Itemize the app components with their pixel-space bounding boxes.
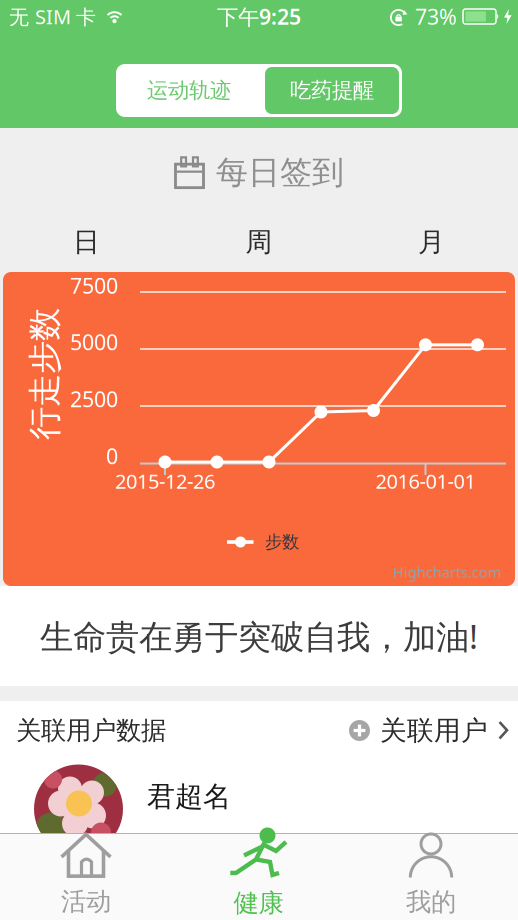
staticText: 7500: [70, 271, 118, 300]
staticText: 每日签到: [216, 153, 344, 192]
button[interactable]: 每日签到: [174, 153, 344, 192]
staticText: 生命贵在勇于突破自我，加油!: [40, 614, 478, 658]
button[interactable]: 君超名: [0, 774, 518, 833]
button[interactable]: 健康: [172, 833, 345, 920]
staticText: 无 SIM 卡: [9, 3, 96, 30]
staticText: 2015-12-26: [115, 468, 215, 494]
button[interactable]: 周: [172, 228, 345, 256]
button[interactable]: 活动: [0, 833, 172, 920]
staticText: 5000: [70, 328, 118, 356]
staticText: 关联用户数据: [16, 715, 166, 746]
staticText: 关联用户: [380, 714, 488, 747]
staticText: Highcharts.com: [392, 562, 501, 582]
staticText: 活动: [61, 886, 111, 917]
staticText: 73%: [415, 2, 457, 31]
staticText: 吃药提醒: [290, 77, 374, 104]
staticText: 2016-01-01: [375, 468, 475, 494]
staticText: 行走步数: [0, 353, 111, 394]
button[interactable]: 月: [345, 228, 517, 256]
staticText: 月: [418, 226, 445, 258]
staticText: 0: [106, 442, 118, 470]
staticText: 君超名: [147, 779, 231, 814]
staticText: 下午9:25: [217, 2, 301, 31]
button[interactable]: 吃药提醒: [262, 64, 402, 117]
staticText: 周: [245, 226, 272, 258]
staticText: 2500: [70, 385, 118, 413]
staticText: 健康: [233, 887, 283, 918]
button[interactable]: 日: [0, 228, 172, 256]
button[interactable]: 关联用户: [349, 714, 509, 747]
staticText: 我的: [406, 886, 456, 917]
staticText: 日: [73, 226, 100, 258]
button[interactable]: 我的: [345, 833, 517, 920]
button[interactable]: 运动轨迹: [116, 64, 262, 117]
staticText: 步数: [265, 531, 299, 553]
staticText: 运动轨迹: [147, 77, 231, 104]
